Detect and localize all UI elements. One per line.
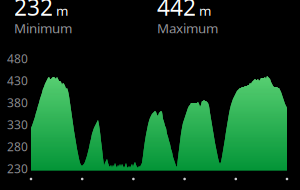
staticText: 430: [7, 72, 28, 88]
staticText: 330: [7, 116, 28, 132]
staticText: m: [199, 2, 211, 19]
staticText: 480: [7, 50, 28, 66]
staticText: m: [56, 2, 68, 19]
staticText: 230: [7, 160, 28, 176]
staticText: 280: [7, 138, 28, 154]
staticText: 380: [7, 94, 28, 110]
staticText: 232: [14, 0, 53, 22]
staticText: Minimum: [14, 19, 72, 37]
staticText: 442: [157, 0, 196, 22]
staticText: Maximum: [157, 19, 218, 37]
